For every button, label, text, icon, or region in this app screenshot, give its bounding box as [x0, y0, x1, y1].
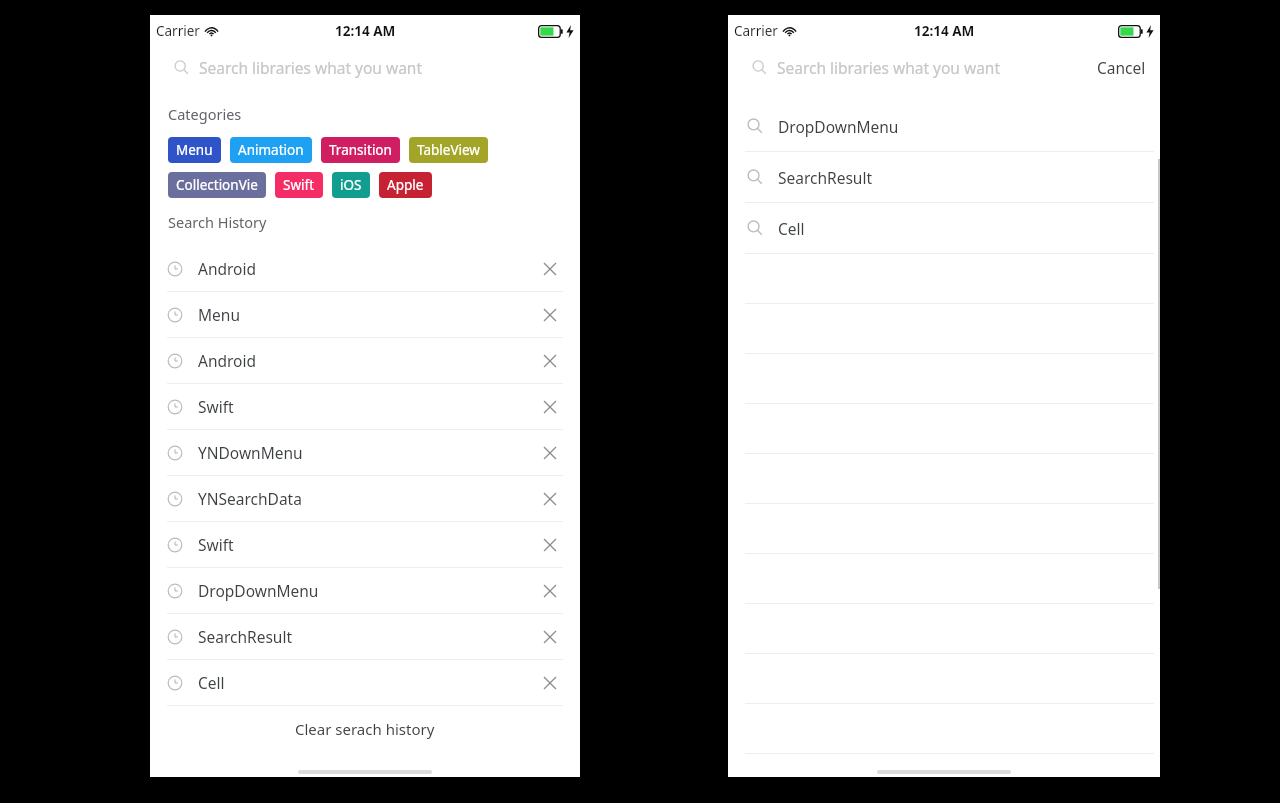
button[interactable]: Cancel: [1083, 47, 1160, 87]
button[interactable]: Android: [150, 246, 580, 291]
staticText: Swift: [198, 396, 234, 417]
staticText: Clear serach history: [295, 719, 435, 739]
button[interactable]: Menu: [168, 137, 221, 163]
staticText: Search History: [168, 212, 267, 232]
staticText: Carrier: [734, 22, 778, 40]
staticText: iOS: [340, 176, 362, 194]
staticText: Menu: [198, 304, 240, 325]
button[interactable]: Remove Cell from history: [537, 670, 563, 696]
staticText: Categories: [168, 104, 242, 124]
button[interactable]: TableView: [409, 137, 488, 163]
staticText: SearchResult: [778, 167, 873, 188]
button[interactable]: Remove YNDownMenu from history: [537, 440, 563, 466]
staticText: DropDownMenu: [198, 580, 319, 601]
staticText: Search libraries what you want: [199, 57, 423, 78]
button[interactable]: Remove Swift from history: [537, 394, 563, 420]
button[interactable]: Remove SearchResult from history: [537, 624, 563, 650]
staticText: Animation: [238, 141, 304, 159]
button[interactable]: CollectionVie: [168, 172, 266, 198]
button[interactable]: Remove Android from history: [537, 348, 563, 374]
button[interactable]: Search libraries what you want: [728, 47, 1083, 87]
button[interactable]: iOS: [332, 172, 370, 198]
staticText: Cell: [778, 218, 805, 239]
button[interactable]: Remove Android from history: [537, 256, 563, 282]
button[interactable]: Transition: [321, 137, 400, 163]
button[interactable]: Remove Menu from history: [537, 302, 563, 328]
staticText: 12:14 AM: [335, 22, 396, 40]
button[interactable]: Animation: [230, 137, 312, 163]
staticText: Android: [198, 350, 257, 371]
button[interactable]: Remove DropDownMenu from history: [537, 578, 563, 604]
button[interactable]: Menu: [150, 292, 580, 337]
button[interactable]: Swift: [150, 384, 580, 429]
staticText: TableView: [417, 141, 480, 159]
staticText: Search libraries what you want: [777, 57, 1001, 78]
button[interactable]: YNSearchData: [150, 476, 580, 521]
button[interactable]: DropDownMenu: [728, 101, 1160, 151]
button[interactable]: SearchResult: [150, 614, 580, 659]
button[interactable]: Clear serach history: [150, 706, 580, 751]
button[interactable]: Cell: [150, 660, 580, 705]
staticText: CollectionVie: [176, 176, 258, 194]
staticText: Menu: [176, 141, 213, 159]
button[interactable]: Remove Swift from history: [537, 532, 563, 558]
button[interactable]: Swift: [150, 522, 580, 567]
button[interactable]: Android: [150, 338, 580, 383]
staticText: Carrier: [156, 22, 200, 40]
button[interactable]: SearchResult: [728, 152, 1160, 202]
button[interactable]: Remove YNSearchData from history: [537, 486, 563, 512]
staticText: Transition: [329, 141, 392, 159]
button[interactable]: YNDownMenu: [150, 430, 580, 475]
button[interactable]: Apple: [379, 172, 432, 198]
staticText: 12:14 AM: [914, 22, 975, 40]
button[interactable]: Cell: [728, 203, 1160, 253]
button[interactable]: DropDownMenu: [150, 568, 580, 613]
staticText: DropDownMenu: [778, 116, 899, 137]
staticText: Swift: [283, 176, 315, 194]
staticText: Cancel: [1097, 57, 1146, 78]
staticText: Swift: [198, 534, 234, 555]
button[interactable]: Swift: [275, 172, 323, 198]
staticText: SearchResult: [198, 626, 293, 647]
staticText: Android: [198, 258, 257, 279]
button[interactable]: Search libraries what you want: [150, 47, 580, 87]
staticText: Apple: [387, 176, 424, 194]
staticText: YNDownMenu: [198, 442, 303, 463]
staticText: Cell: [198, 672, 225, 693]
staticText: YNSearchData: [198, 488, 302, 509]
